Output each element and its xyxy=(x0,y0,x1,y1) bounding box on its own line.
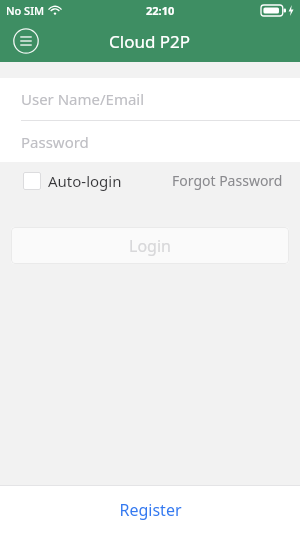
button[interactable]: Password xyxy=(0,121,300,162)
button[interactable]: Login xyxy=(11,227,289,264)
staticText: User Name/Email xyxy=(21,89,145,109)
staticText: Password xyxy=(21,132,89,152)
staticText: Register xyxy=(119,499,182,521)
button[interactable]: User Name/Email xyxy=(0,78,300,120)
button[interactable]: Forgot Password xyxy=(172,171,283,190)
button[interactable]: Menu xyxy=(12,27,40,55)
staticText: Auto-login xyxy=(48,171,122,191)
staticText: 22:10 xyxy=(146,3,175,18)
staticText: No SIM xyxy=(6,3,45,18)
staticText: Forgot Password xyxy=(172,171,283,190)
staticText: Login xyxy=(129,235,171,257)
staticText: Cloud P2P xyxy=(109,30,191,53)
button[interactable]: Auto-login xyxy=(23,171,122,191)
button[interactable]: Register xyxy=(0,486,300,533)
